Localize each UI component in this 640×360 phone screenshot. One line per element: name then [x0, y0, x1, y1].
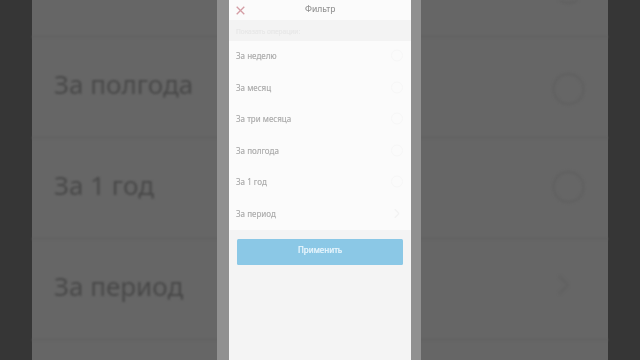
staticText: За неделю — [236, 50, 389, 61]
staticText: За 1 год — [54, 167, 154, 202]
staticText: За период — [54, 268, 184, 303]
button[interactable]: За месяц — [229, 73, 411, 105]
staticText: За полгода — [54, 66, 194, 101]
staticText: За 1 год — [236, 176, 389, 187]
staticText: Фильтр — [305, 3, 336, 15]
button[interactable]: За три месяца — [229, 104, 411, 136]
staticText: За период — [236, 208, 389, 219]
button[interactable]: За период — [229, 199, 411, 231]
button[interactable]: За 1 год — [229, 167, 411, 199]
button[interactable]: За полгода — [229, 136, 411, 168]
staticText: Показать операции: — [236, 27, 301, 36]
staticText: За три месяца — [236, 113, 389, 124]
staticText: За полгода — [236, 145, 389, 156]
button[interactable]: Close — [231, 1, 249, 19]
staticText: Применить — [298, 244, 343, 255]
button[interactable]: Применить — [237, 239, 403, 265]
button[interactable]: За неделю — [229, 41, 411, 73]
staticText: За месяц — [236, 82, 389, 93]
